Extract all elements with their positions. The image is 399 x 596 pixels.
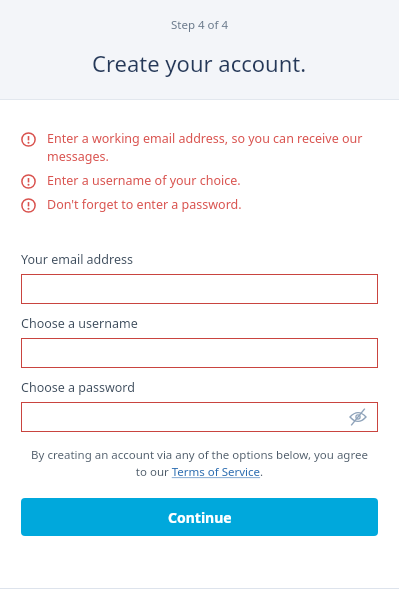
staticText: Choose a username [21,315,138,332]
staticText: Your email address [21,251,133,268]
staticText: Enter a username of your choice. [47,172,241,189]
button[interactable]: Show password [21,402,378,432]
staticText: Continue [168,508,232,527]
staticText: Enter a working email address, so you ca… [47,130,378,165]
staticText: Don't forget to enter a password. [47,196,242,213]
button[interactable]: Show password [347,406,369,428]
button[interactable]: Continue [21,498,378,536]
staticText: Choose a password [21,379,135,396]
staticText: Step 4 of 4 [171,17,229,33]
button[interactable] [21,338,378,368]
staticText: Create your account. [92,48,307,78]
button[interactable] [21,274,378,304]
button[interactable]: By creating an account via any of the op… [26,447,373,480]
